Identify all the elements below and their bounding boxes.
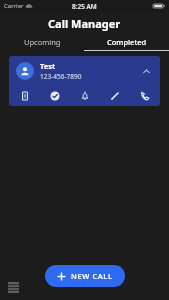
staticText: Call Manager <box>48 16 121 31</box>
button[interactable]: Call <box>130 86 160 106</box>
staticText: Upcoming <box>24 37 61 47</box>
staticText: 123-456-7890 <box>40 72 82 81</box>
staticText: Carrier <box>4 2 24 10</box>
staticText: Test <box>40 61 56 71</box>
button[interactable]: Completed <box>84 34 169 50</box>
button[interactable]: Collapse <box>139 64 153 78</box>
button[interactable]: Mark complete <box>40 86 70 106</box>
button[interactable]: Reminder <box>70 86 100 106</box>
staticText: 8:25 AM <box>72 2 97 11</box>
button[interactable]: NEW CALL <box>45 265 125 287</box>
button[interactable]: Delete <box>9 86 40 106</box>
button[interactable]: Edit <box>100 86 130 106</box>
staticText: NEW CALL <box>71 271 113 281</box>
button[interactable]: Upcoming <box>0 34 84 50</box>
button[interactable]: Test <box>9 56 160 106</box>
button[interactable]: Menu <box>6 280 20 294</box>
staticText: Completed <box>107 37 147 47</box>
